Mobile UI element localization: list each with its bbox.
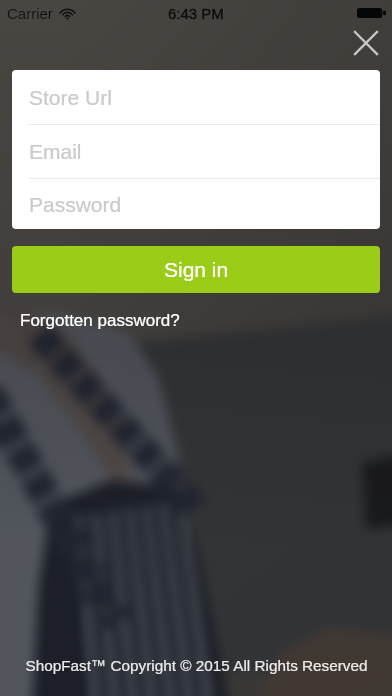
staticText: Carrier xyxy=(7,5,53,22)
staticText: ShopFast™ Copyright © 2015 All Rights Re… xyxy=(25,657,368,674)
button[interactable]: Sign in xyxy=(12,246,380,293)
button[interactable]: Password xyxy=(12,179,380,229)
button[interactable]: Store Url xyxy=(12,70,380,124)
button[interactable]: Close xyxy=(348,25,384,61)
staticText: 6:43 PM xyxy=(168,5,224,22)
staticText: Sign in xyxy=(164,258,229,281)
staticText: Password xyxy=(29,193,122,216)
staticText: Store Url xyxy=(29,86,112,109)
staticText: Email xyxy=(29,140,82,163)
button[interactable]: Email xyxy=(12,125,380,178)
staticText: Forgotten password? xyxy=(20,311,180,330)
button[interactable]: Forgotten password? xyxy=(20,311,180,330)
